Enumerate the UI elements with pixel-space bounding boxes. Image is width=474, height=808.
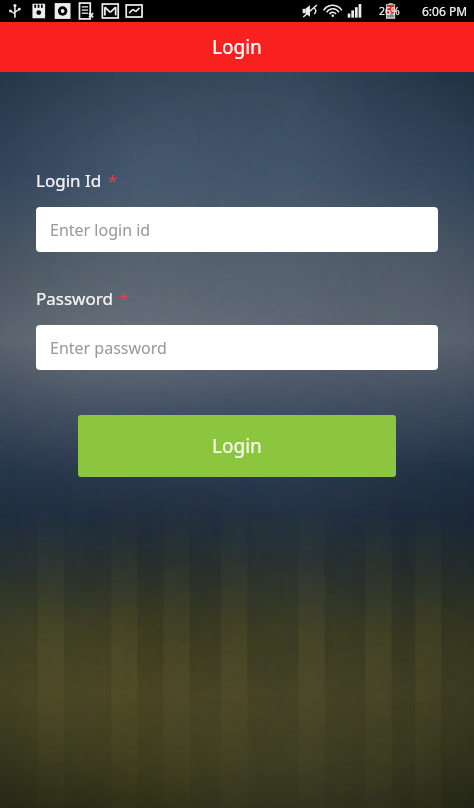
staticText: 6:06 PM bbox=[422, 3, 468, 19]
staticText: Login bbox=[212, 433, 262, 459]
staticText: Password bbox=[36, 287, 113, 310]
staticText: Login bbox=[212, 34, 262, 60]
button[interactable]: Enter login id bbox=[36, 207, 438, 252]
staticText: * bbox=[119, 287, 129, 310]
staticText: 26% bbox=[379, 4, 400, 18]
staticText: Enter password bbox=[50, 337, 167, 359]
staticText: Login Id bbox=[36, 169, 102, 192]
button[interactable]: Enter password bbox=[36, 325, 438, 370]
staticText: * bbox=[108, 169, 118, 192]
staticText: Enter login id bbox=[50, 219, 151, 241]
button[interactable]: Login bbox=[78, 415, 396, 477]
